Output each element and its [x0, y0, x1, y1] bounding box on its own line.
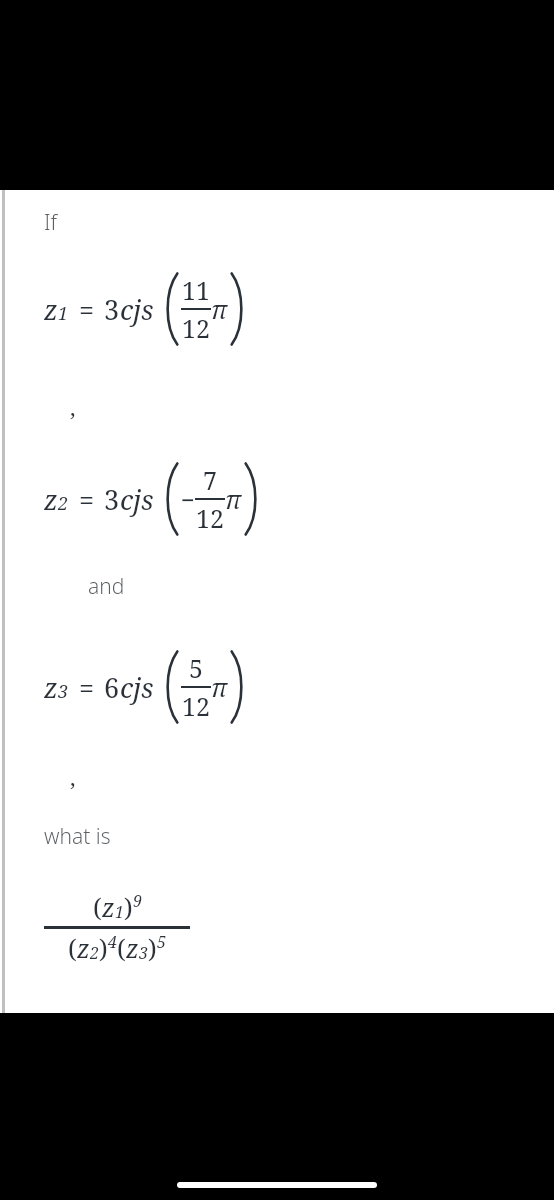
staticText: 11: [182, 273, 210, 307]
staticText: what is: [44, 822, 111, 851]
staticText: 5: [157, 931, 166, 953]
staticText: =: [79, 291, 95, 328]
staticText: 12: [182, 689, 210, 723]
staticText: and: [88, 572, 125, 601]
staticText: 1: [115, 901, 124, 923]
staticText: (: [117, 931, 126, 965]
staticText: ): [124, 890, 133, 924]
staticText: z: [44, 669, 58, 706]
staticText: 12: [182, 311, 210, 345]
staticText: 12: [196, 501, 224, 535]
staticText: cjs: [120, 481, 154, 518]
staticText: z: [77, 931, 90, 965]
staticText: (: [68, 931, 77, 965]
staticText: π: [211, 292, 228, 326]
button[interactable]: Home: [177, 1182, 377, 1188]
staticText: 4: [108, 931, 117, 953]
staticText: z: [126, 931, 139, 965]
staticText: cjs: [120, 669, 154, 706]
staticText: 9: [133, 890, 142, 912]
staticText: 1: [58, 301, 69, 326]
staticText: z: [102, 890, 115, 924]
staticText: −: [181, 483, 195, 516]
staticText: =: [79, 669, 95, 706]
staticText: z: [44, 291, 58, 328]
staticText: ,: [70, 392, 76, 422]
staticText: =: [79, 481, 95, 518]
staticText: 2: [90, 942, 99, 964]
staticText: π: [211, 670, 228, 704]
staticText: If: [44, 208, 58, 237]
button[interactable]: If: [0, 190, 554, 1013]
staticText: π: [225, 482, 242, 516]
staticText: 3: [104, 481, 120, 518]
staticText: ,: [70, 762, 76, 792]
staticText: ): [148, 931, 157, 965]
staticText: 2: [58, 491, 69, 516]
staticText: 5: [189, 651, 203, 685]
staticText: 6: [104, 669, 120, 706]
staticText: 3: [104, 291, 120, 328]
staticText: (: [93, 890, 102, 924]
staticText: 3: [139, 942, 148, 964]
staticText: ): [99, 931, 108, 965]
staticText: 7: [203, 463, 217, 497]
staticText: z: [44, 481, 58, 518]
staticText: cjs: [120, 291, 154, 328]
staticText: 3: [58, 679, 69, 704]
